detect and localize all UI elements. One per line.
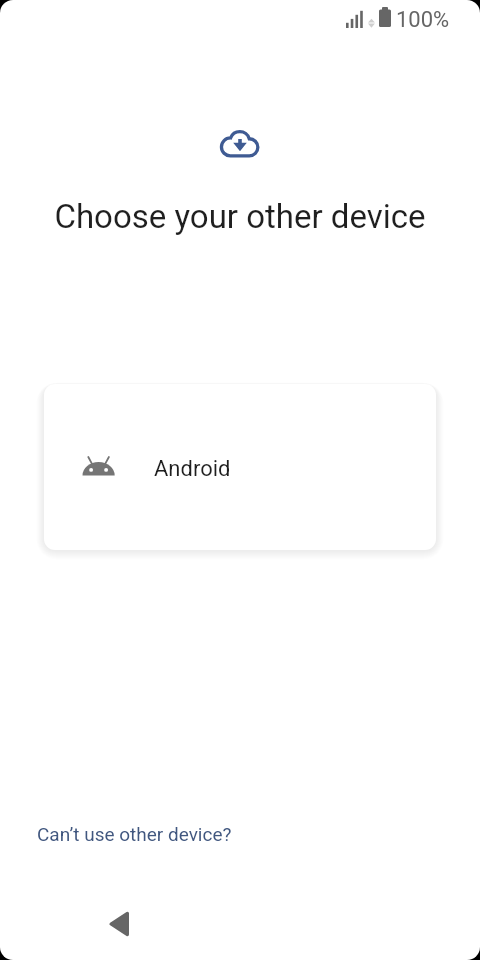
staticText: Android [154, 456, 231, 482]
staticText: 100% [396, 7, 450, 33]
staticText: Choose your other device [0, 197, 480, 236]
button[interactable]: Android [44, 384, 436, 550]
other: Battery full [379, 7, 392, 27]
other: Mobile signal: four bars [346, 9, 364, 28]
other: Cloud download [218, 127, 262, 160]
button[interactable]: Can’t use other device? [26, 815, 243, 853]
button[interactable]: Back [94, 900, 142, 948]
staticText: Can’t use other device? [37, 823, 232, 845]
